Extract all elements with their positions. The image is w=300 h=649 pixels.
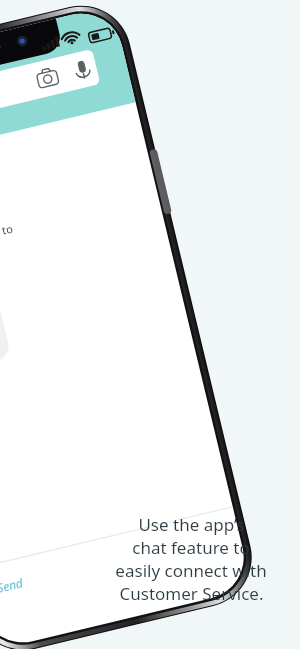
button[interactable]: Use the app’s (96, 513, 286, 605)
staticText: easily connect with (115, 559, 267, 582)
staticText: chat feature to (132, 536, 250, 559)
staticText: Use the app’s (138, 513, 245, 536)
button[interactable]: Amazon app chat screen shown on a phone (0, 0, 300, 649)
staticText: Customer Service. (119, 582, 264, 605)
